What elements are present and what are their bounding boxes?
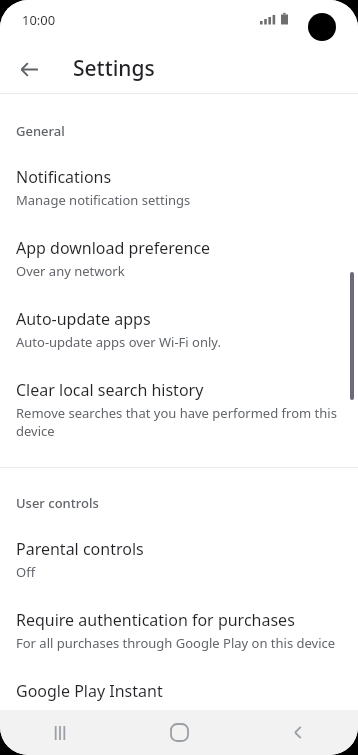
staticText: App download preference xyxy=(16,237,211,259)
staticText: Auto-update apps xyxy=(16,308,151,330)
button[interactable]: Parental controls xyxy=(0,538,358,581)
button[interactable]: Auto-update apps xyxy=(0,308,358,351)
staticText: Clear local search history xyxy=(16,379,204,401)
button[interactable]: App download preference xyxy=(0,237,358,280)
staticText: Google Play Instant xyxy=(16,680,163,702)
staticText: Auto-update apps over Wi-Fi only. xyxy=(16,333,221,351)
staticText: Remove searches that you have performed … xyxy=(16,404,342,440)
button[interactable]: Back xyxy=(10,50,48,88)
button[interactable]: Recent apps xyxy=(0,710,120,755)
staticText: 10:00 xyxy=(22,11,56,29)
button[interactable]: Google Play Instant xyxy=(0,680,358,702)
staticText: Settings xyxy=(73,54,155,83)
button[interactable]: Home xyxy=(120,710,239,755)
button[interactable]: Notifications xyxy=(0,166,358,209)
staticText: Parental controls xyxy=(16,538,144,560)
button[interactable]: Require authentication for purchases xyxy=(0,609,358,652)
staticText: Require authentication for purchases xyxy=(16,609,295,631)
button[interactable]: Back xyxy=(239,710,358,755)
staticText: Over any network xyxy=(16,262,125,280)
staticText: For all purchases through Google Play on… xyxy=(16,634,336,652)
staticText: Off xyxy=(16,563,36,581)
button[interactable]: Clear local search history xyxy=(0,379,358,440)
staticText: General xyxy=(16,122,65,140)
staticText: User controls xyxy=(16,494,99,512)
staticText: Manage notification settings xyxy=(16,191,191,209)
staticText: Notifications xyxy=(16,166,112,188)
